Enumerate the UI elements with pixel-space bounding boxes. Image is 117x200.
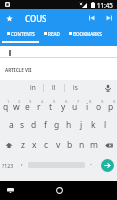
button[interactable]: a — [6, 115, 17, 135]
button[interactable]: READ — [41, 27, 63, 40]
staticText: z — [21, 139, 25, 151]
button[interactable]: d — [28, 115, 39, 135]
staticText: e — [25, 101, 30, 113]
button[interactable]: 1 — [0, 95, 11, 115]
staticText: CONTENTS — [11, 31, 35, 37]
button[interactable]: , — [16, 155, 28, 175]
staticText: ?123 — [2, 162, 14, 169]
staticText: j — [80, 119, 83, 131]
button[interactable]: 3 — [22, 95, 33, 115]
button[interactable]: n — [76, 135, 88, 155]
button[interactable]: Bookmark — [0, 9, 18, 27]
button[interactable]: 6 — [57, 95, 69, 115]
button[interactable]: in — [23, 80, 43, 95]
staticText: 4 — [41, 99, 44, 105]
staticText: READ — [48, 31, 60, 37]
button[interactable]: x — [28, 135, 40, 155]
button[interactable]: v — [52, 135, 64, 155]
staticText: q — [3, 101, 9, 113]
staticText: w — [13, 101, 20, 113]
staticText: c — [44, 139, 49, 151]
staticText: . — [90, 158, 92, 168]
staticText: 11:45 — [97, 1, 113, 9]
button[interactable]: g — [51, 115, 63, 135]
button[interactable]: 0 — [105, 95, 117, 115]
staticText: 9 — [101, 99, 104, 105]
staticText: 6 — [65, 99, 68, 105]
staticText: BOOKMARKS — [73, 31, 102, 37]
button[interactable]: Next — [100, 9, 117, 27]
staticText: l — [104, 119, 107, 131]
button[interactable]: 2 — [11, 95, 22, 115]
button[interactable]: Backspace — [100, 135, 117, 155]
staticText: x — [32, 139, 37, 151]
button[interactable]: z — [17, 135, 28, 155]
staticText: n — [79, 139, 85, 151]
staticText: g — [54, 119, 60, 131]
staticText: 8 — [89, 99, 92, 105]
staticText: u — [72, 101, 78, 113]
button[interactable]: 7 — [69, 95, 81, 115]
button[interactable]: . — [85, 155, 97, 175]
button[interactable]: b — [64, 135, 76, 155]
staticText: , — [21, 158, 23, 168]
staticText: 5 — [53, 99, 56, 105]
button[interactable]: 5 — [45, 95, 57, 115]
button[interactable]: k — [87, 115, 99, 135]
staticText: f — [44, 119, 47, 131]
button[interactable]: CONTENTS — [0, 27, 41, 40]
button[interactable]: Home — [48, 181, 70, 200]
staticText: r — [37, 101, 41, 113]
staticText: COUS — [25, 13, 47, 24]
staticText: 1 — [7, 99, 10, 105]
button[interactable]: s — [17, 115, 28, 135]
staticText: p — [108, 101, 114, 113]
button[interactable]: 4 — [33, 95, 45, 115]
button[interactable]: m — [88, 135, 100, 155]
staticText: m — [90, 139, 98, 151]
staticText: ll — [52, 83, 56, 92]
button[interactable]: j — [75, 115, 87, 135]
staticText: b — [67, 139, 73, 151]
staticText: v — [56, 139, 61, 151]
staticText: o — [96, 101, 102, 113]
button[interactable]: Shift — [0, 135, 17, 155]
button[interactable]: l — [99, 115, 111, 135]
button[interactable]: Hide keyboard — [0, 181, 21, 200]
staticText: s — [20, 119, 25, 131]
button[interactable]: BOOKMARKS — [63, 27, 107, 40]
button[interactable]: Enter — [101, 159, 114, 172]
button[interactable]: ll — [44, 80, 64, 95]
staticText: t — [49, 101, 53, 113]
staticText: y — [61, 101, 66, 113]
button[interactable]: ?123 — [0, 155, 16, 175]
staticText: d — [31, 119, 37, 131]
staticText: 7 — [77, 99, 80, 105]
button[interactable]: 9 — [93, 95, 105, 115]
button[interactable]: Previous — [83, 9, 100, 27]
staticText: 0 — [113, 99, 116, 105]
button[interactable]: f — [39, 115, 51, 135]
staticText: is — [73, 83, 78, 92]
staticText: in — [30, 83, 36, 92]
button[interactable]: is — [65, 80, 85, 95]
button[interactable]: c — [40, 135, 52, 155]
staticText: ARTICLE VII — [5, 67, 32, 73]
button[interactable]: Voice input — [99, 80, 117, 95]
staticText: k — [91, 119, 96, 131]
staticText: 2 — [18, 99, 21, 105]
button[interactable]: 8 — [81, 95, 93, 115]
button[interactable]: h — [63, 115, 75, 135]
staticText: 3 — [29, 99, 32, 105]
staticText: h — [66, 119, 72, 131]
staticText: i — [86, 101, 89, 113]
staticText: a — [9, 119, 14, 131]
